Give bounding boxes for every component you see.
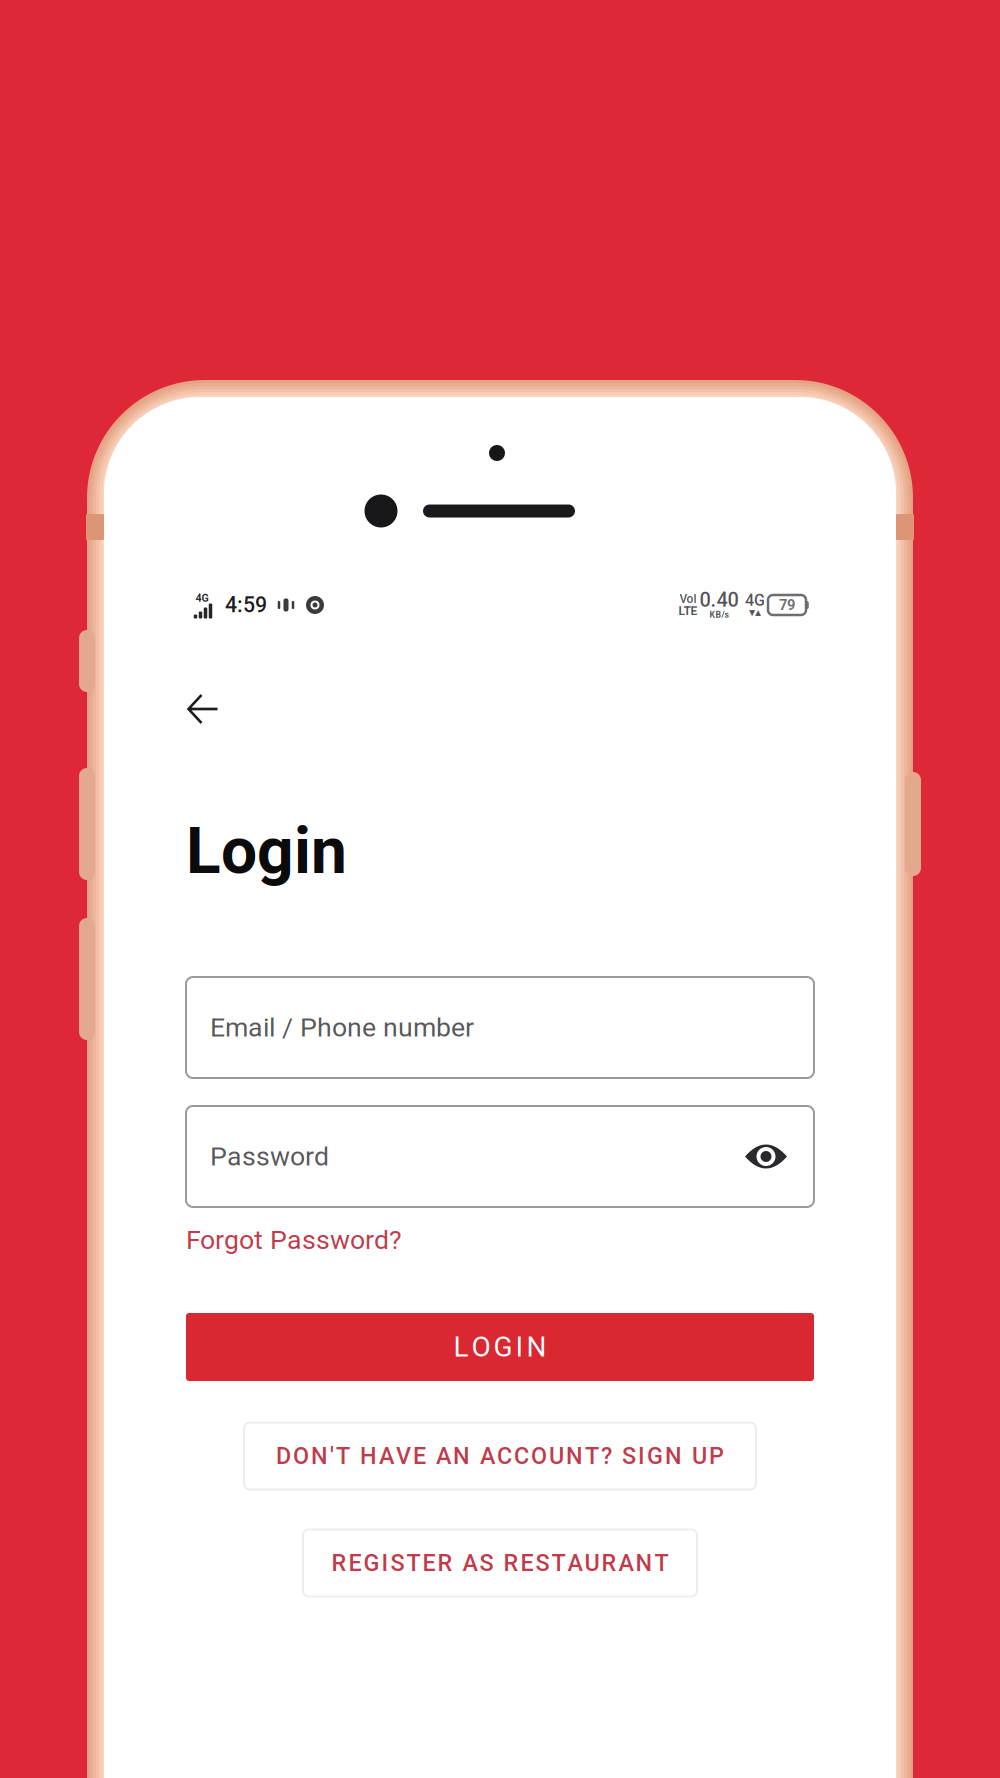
staticText: Password	[210, 1141, 329, 1172]
button[interactable]: Back	[171, 680, 235, 738]
staticText: L O G I N	[453, 1331, 546, 1363]
button[interactable]: D O N ' T H A V E A N A C C O U N T ? S …	[244, 1422, 756, 1489]
staticText: 4G	[195, 592, 208, 604]
staticText: KB/s	[709, 610, 728, 620]
staticText: 4:59	[225, 592, 267, 617]
staticText: Login	[186, 813, 347, 888]
button[interactable]: Forgot Password?	[0, 0, 1000, 1778]
button[interactable]: Show password	[736, 1131, 796, 1181]
staticText: Vol	[679, 592, 696, 606]
staticText: ▼▲	[749, 608, 761, 617]
staticText: D O N ' T H A V E A N A C C O U N T ? S …	[276, 1442, 724, 1470]
staticText: 4G	[745, 591, 765, 610]
button[interactable]: R E G I S T E R A S R E S T A U R A N T	[303, 1529, 697, 1596]
staticText: 0.40	[699, 588, 738, 612]
staticText: LTE	[678, 604, 697, 618]
staticText: Email / Phone number	[210, 1012, 474, 1043]
button[interactable]: L O G I N	[186, 1313, 814, 1381]
staticText: Forgot Password?	[186, 1224, 402, 1256]
staticText: 79	[779, 596, 795, 614]
staticText: R E G I S T E R A S R E S T A U R A N T	[331, 1549, 668, 1577]
